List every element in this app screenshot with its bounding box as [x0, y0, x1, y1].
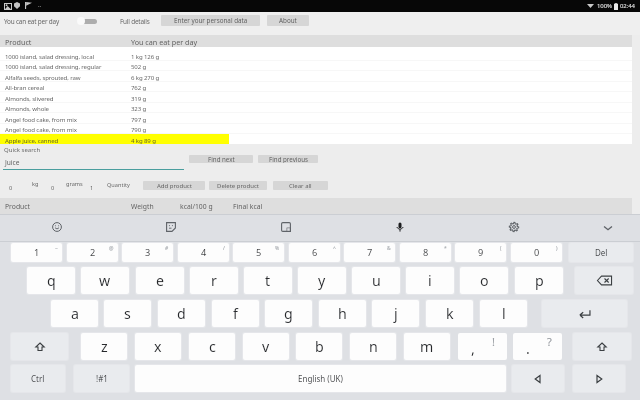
button[interactable]: Find previous [258, 155, 318, 163]
button[interactable]: Voice input [390, 217, 410, 237]
button[interactable]: l [480, 300, 527, 327]
staticText: .. [38, 1, 42, 9]
staticText: c [209, 337, 216, 356]
button[interactable]: 0 [511, 243, 562, 262]
button[interactable]: i [406, 267, 454, 294]
button[interactable]: w [81, 267, 129, 294]
staticText: 797 g [131, 115, 147, 123]
staticText: ! [492, 334, 495, 349]
button[interactable]: Add product [143, 181, 205, 190]
button[interactable]: t [244, 267, 292, 294]
button[interactable]: Enter your personal data [161, 15, 260, 26]
staticText: You can eat per day [131, 37, 198, 47]
staticText: 6 kg 270 g [131, 73, 160, 81]
button[interactable]: j [372, 300, 419, 327]
button[interactable]: s [104, 300, 151, 327]
staticText: Almonds, slivered [5, 94, 54, 102]
staticText: Final kcal [233, 202, 263, 211]
staticText: Juice [5, 158, 20, 167]
staticText: ~ [55, 245, 58, 252]
button[interactable]: 9 [455, 243, 506, 262]
staticText: You can eat per day [4, 17, 60, 26]
staticText: kcal/100 g [180, 202, 213, 211]
staticText: Quantity [107, 181, 130, 189]
button[interactable]: c [189, 333, 235, 360]
button[interactable]: 6 [289, 243, 340, 262]
staticText: 323 g [131, 104, 147, 112]
button[interactable]: x [135, 333, 181, 360]
button[interactable]: All-bran cereal [0, 81, 632, 91]
button[interactable]: 1 [11, 243, 62, 262]
button[interactable]: d [158, 300, 205, 327]
staticText: Product [5, 37, 32, 47]
button[interactable]: !#1 [74, 365, 129, 392]
button[interactable]: y [298, 267, 346, 294]
staticText: 9 [478, 246, 484, 259]
button[interactable]: q [27, 267, 75, 294]
button[interactable]: Enter [542, 300, 627, 327]
button[interactable]: h [319, 300, 366, 327]
button[interactable]: 1000 island, salad dressing, local [0, 50, 632, 60]
button[interactable]: v [243, 333, 289, 360]
staticText: r [211, 271, 217, 290]
staticText: e [156, 271, 165, 290]
button[interactable]: 2 [67, 243, 118, 262]
button[interactable]: Delete product [209, 181, 267, 190]
button[interactable]: Move cursor left [512, 365, 564, 392]
staticText: 790 g [131, 125, 147, 133]
button[interactable]: 8 [400, 243, 451, 262]
button[interactable]: Angel food cake, from mix [0, 123, 632, 133]
button[interactable]: u [352, 267, 400, 294]
button[interactable]: f [212, 300, 259, 327]
staticText: Full details [120, 17, 150, 26]
button[interactable]: You can eat per day toggle [76, 17, 97, 25]
button[interactable]: English (UK) [135, 365, 506, 392]
button[interactable]: m [404, 333, 450, 360]
staticText: 1 kg 126 g [131, 52, 160, 60]
button[interactable]: a [51, 300, 98, 327]
staticText: g [284, 304, 293, 323]
button[interactable]: 3 [122, 243, 173, 262]
button[interactable]: r [190, 267, 238, 294]
staticText: m [420, 337, 434, 356]
button[interactable]: GIF [276, 217, 296, 237]
button[interactable]: e [136, 267, 184, 294]
button[interactable]: , [458, 333, 507, 360]
staticText: Almonds, whole [5, 104, 49, 112]
staticText: Find next [208, 155, 235, 163]
button[interactable]: 5 [233, 243, 284, 262]
button[interactable]: Find next [189, 155, 253, 163]
button[interactable]: . [513, 333, 562, 360]
button[interactable]: 4 [178, 243, 229, 262]
button[interactable]: Almonds, slivered [0, 92, 632, 102]
button[interactable]: z [81, 333, 127, 360]
button[interactable]: About [267, 15, 309, 26]
staticText: 02:44 [620, 2, 635, 10]
button[interactable]: Emoji [47, 217, 67, 237]
button[interactable]: Almonds, whole [0, 102, 632, 112]
button[interactable]: p [515, 267, 563, 294]
button[interactable]: Ctrl [11, 365, 65, 392]
button[interactable]: Alfalfa seeds, sprouted, raw [0, 71, 632, 81]
button[interactable]: Del [569, 243, 633, 262]
staticText: 2 [90, 246, 96, 259]
button[interactable]: g [265, 300, 312, 327]
button[interactable]: 1000 island, salad dressing, regular [0, 60, 632, 70]
button[interactable]: k [426, 300, 473, 327]
button[interactable]: Shift [11, 333, 68, 360]
button[interactable]: Angel food cake, from mix [0, 113, 632, 123]
button[interactable]: Stickers [161, 217, 181, 237]
button[interactable]: Shift [573, 333, 631, 360]
button[interactable]: Move cursor right [573, 365, 625, 392]
staticText: u [372, 271, 381, 290]
button[interactable]: b [296, 333, 342, 360]
button[interactable]: Backspace [575, 267, 633, 294]
button[interactable]: 7 [344, 243, 395, 262]
button[interactable]: Hide keyboard [598, 218, 618, 238]
button[interactable]: Apple juice, canned [0, 134, 229, 144]
button[interactable]: Settings [504, 217, 524, 237]
staticText: 100% [597, 2, 612, 10]
button[interactable]: o [460, 267, 508, 294]
button[interactable]: Clear all [273, 181, 328, 190]
button[interactable]: n [350, 333, 396, 360]
